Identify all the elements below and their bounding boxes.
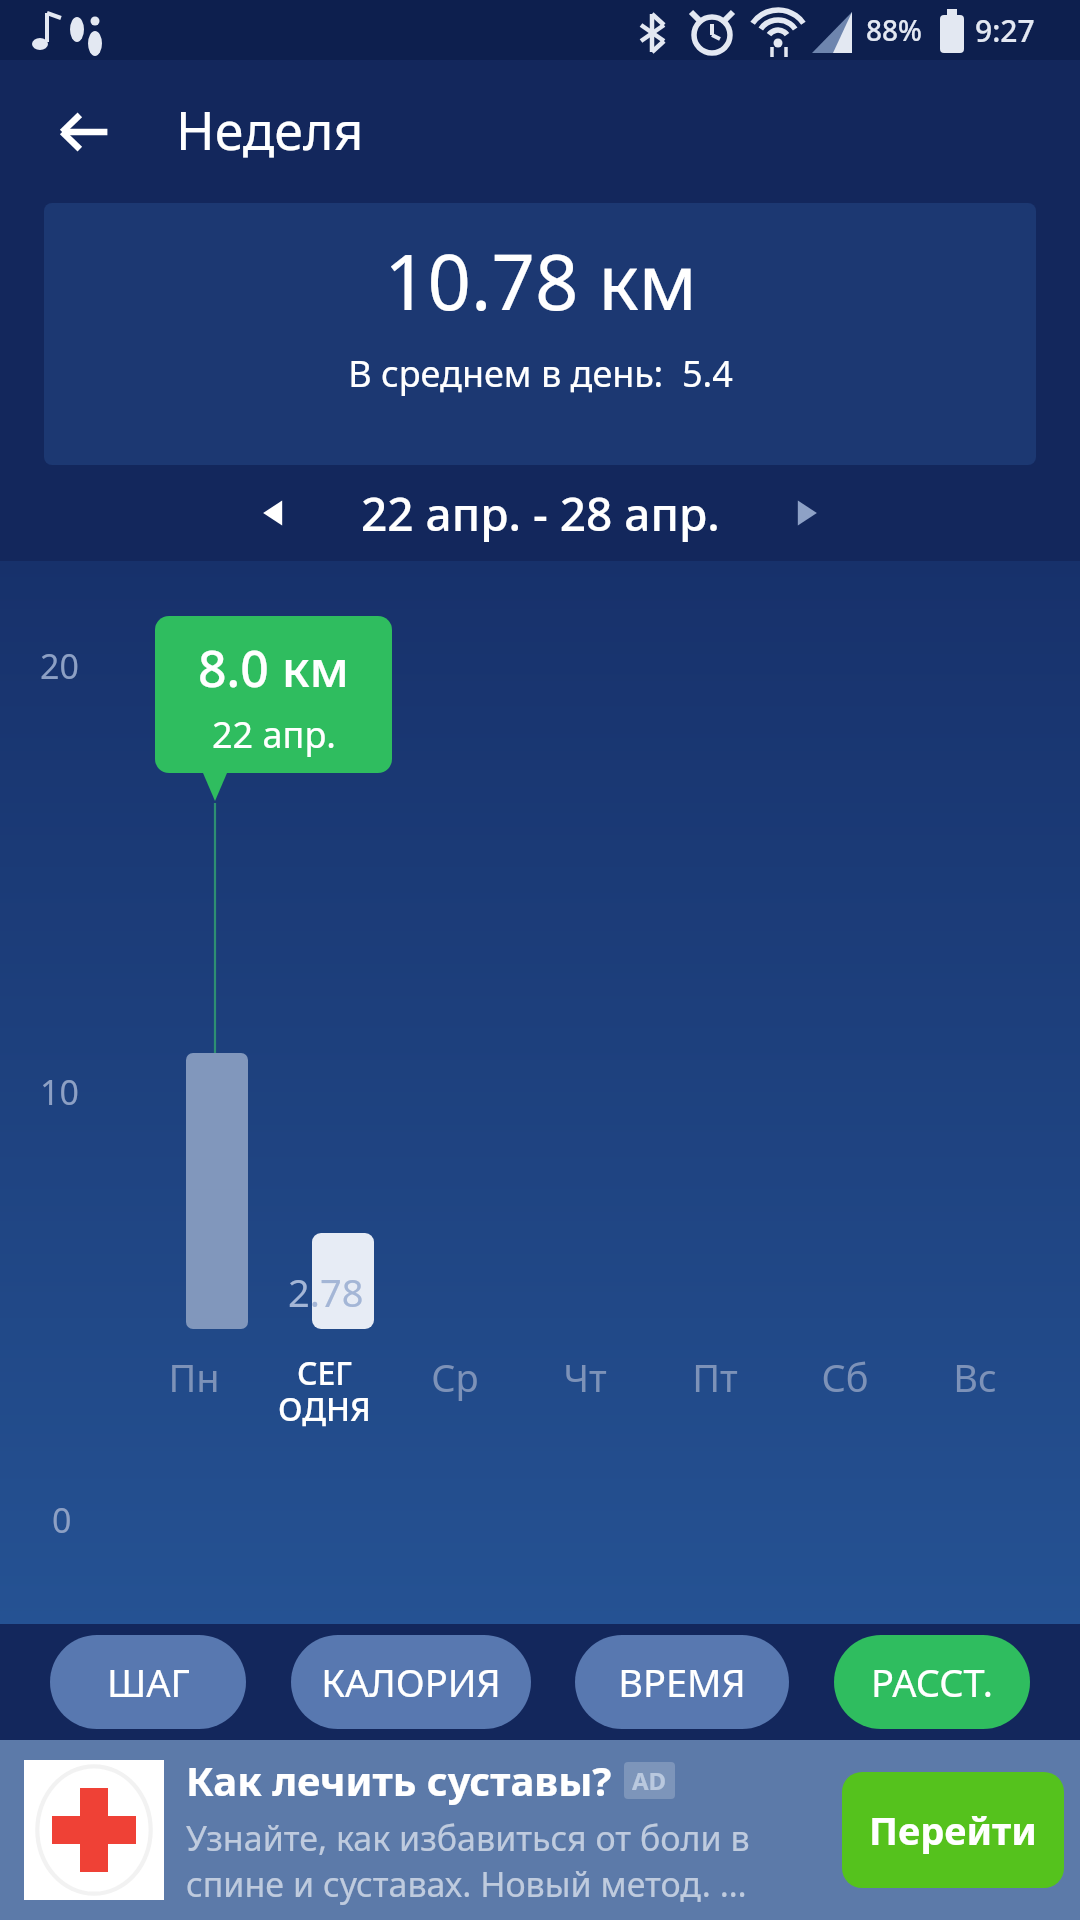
button[interactable]: РАССТ. xyxy=(834,1635,1030,1729)
staticText: В среднем в день: 5.4 xyxy=(348,349,733,398)
staticText: 88% xyxy=(866,11,922,49)
button[interactable]: Пт xyxy=(650,1351,780,1403)
staticText: Пн xyxy=(168,1351,220,1403)
staticText: Пт xyxy=(692,1351,738,1403)
staticText: Узнайте, как избавиться от боли в спине … xyxy=(186,1815,832,1907)
staticText: 10 xyxy=(40,1069,79,1115)
staticText: ВРЕМЯ xyxy=(618,1656,746,1708)
staticText: AD xyxy=(632,1764,667,1797)
staticText: Вс xyxy=(953,1351,997,1403)
button[interactable]: Next week xyxy=(764,471,848,555)
button[interactable]: ШАГ xyxy=(50,1635,246,1729)
staticText: Ср xyxy=(431,1351,479,1403)
staticText: 20 xyxy=(40,643,79,689)
staticText: РАССТ. xyxy=(871,1656,993,1708)
staticText: 2.78 xyxy=(288,1266,364,1318)
staticText: КАЛОРИЯ xyxy=(321,1656,501,1708)
staticText: Сб xyxy=(821,1351,869,1403)
button[interactable]: ВРЕМЯ xyxy=(575,1635,789,1729)
button[interactable]: 8.0 км xyxy=(155,616,392,773)
button[interactable]: Back xyxy=(40,88,128,176)
staticText: 10.78 км xyxy=(384,229,697,333)
staticText: 8.0 км xyxy=(198,634,349,702)
button[interactable]: Previous week xyxy=(232,471,316,555)
staticText: СЕГ ОДНЯ xyxy=(278,1351,371,1431)
button[interactable]: Вс xyxy=(910,1351,1040,1403)
staticText: 22 апр. - 28 апр. xyxy=(361,482,720,545)
button[interactable]: 10.78 км xyxy=(44,203,1036,465)
staticText: Чт xyxy=(563,1351,607,1403)
staticText: ШАГ xyxy=(107,1656,190,1708)
button[interactable]: Чт xyxy=(520,1351,650,1403)
button[interactable]: Сб xyxy=(780,1351,910,1403)
staticText: Перейти xyxy=(869,1804,1037,1856)
staticText: 22 апр. xyxy=(212,710,336,759)
staticText: Неделя xyxy=(176,94,364,165)
staticText: Как лечить суставы? xyxy=(186,1753,612,1807)
button[interactable]: Ср xyxy=(390,1351,520,1403)
button[interactable]: Перейти xyxy=(842,1772,1064,1888)
staticText: 0 xyxy=(52,1497,72,1543)
button[interactable]: КАЛОРИЯ xyxy=(291,1635,531,1729)
staticText: 9:27 xyxy=(975,10,1035,51)
button[interactable]: Пн xyxy=(128,1351,259,1403)
button[interactable]: СЕГ ОДНЯ xyxy=(259,1351,390,1431)
